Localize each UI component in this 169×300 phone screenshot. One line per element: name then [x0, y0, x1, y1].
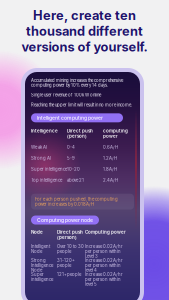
staticText: For each person pushed, the computing po…: [35, 197, 118, 206]
staticText: 121+people: [57, 272, 81, 277]
staticText: Intelligence: [31, 128, 58, 133]
button[interactable]: Computing power node: [31, 215, 99, 224]
staticText: Top intelligence: [31, 178, 62, 183]
staticText: 1.8A/H: [103, 167, 117, 172]
staticText: 0.6A/H: [103, 145, 118, 150]
staticText: Here, create ten: [33, 8, 136, 23]
staticText: Computing power node: [37, 217, 93, 223]
staticText: Direct push (person): [57, 229, 83, 240]
button[interactable]: Intelligent computing power: [31, 113, 123, 122]
staticText: Strong Intelligence Node: [31, 258, 53, 273]
staticText: 31-120+ people: [57, 258, 75, 268]
staticText: Reaching the upper limit will result in …: [31, 102, 132, 107]
staticText: Direct push (person): [67, 128, 93, 139]
staticText: Weak AI: [31, 145, 47, 150]
staticText: Increase 0.02A/hr per person within Leve…: [85, 244, 123, 259]
staticText: thousand different: [26, 24, 143, 38]
staticText: Super intelligence: [31, 272, 53, 282]
staticText: Increase 0.02A/hr per person within leve…: [85, 258, 123, 273]
staticText: Over 10 to 30 people: [57, 244, 84, 254]
staticText: Intelligent Node: [31, 244, 50, 254]
staticText: Intelligent computing power: [37, 115, 103, 121]
staticText: Node: [31, 229, 43, 235]
staticText: 2.4A/H: [103, 178, 118, 183]
staticText: 0-4: [67, 145, 75, 150]
staticText: Strong AI: [31, 156, 51, 161]
staticText: Computing power: [85, 229, 126, 235]
staticText: computing power: [103, 128, 128, 139]
staticText: Single user revenue of 100k W online: [31, 93, 101, 97]
staticText: Super intelligence: [31, 167, 67, 172]
staticText: Increase 0.02A/hr per person within leve…: [85, 272, 123, 287]
staticText: 1.2A/H: [103, 156, 117, 161]
staticText: 10-20: [67, 167, 80, 172]
staticText: Accumulated mining increases the compreh…: [31, 78, 123, 88]
staticText: 5-9: [67, 156, 75, 161]
staticText: above 21: [67, 178, 84, 183]
staticText: versions of yourself.: [21, 39, 147, 54]
